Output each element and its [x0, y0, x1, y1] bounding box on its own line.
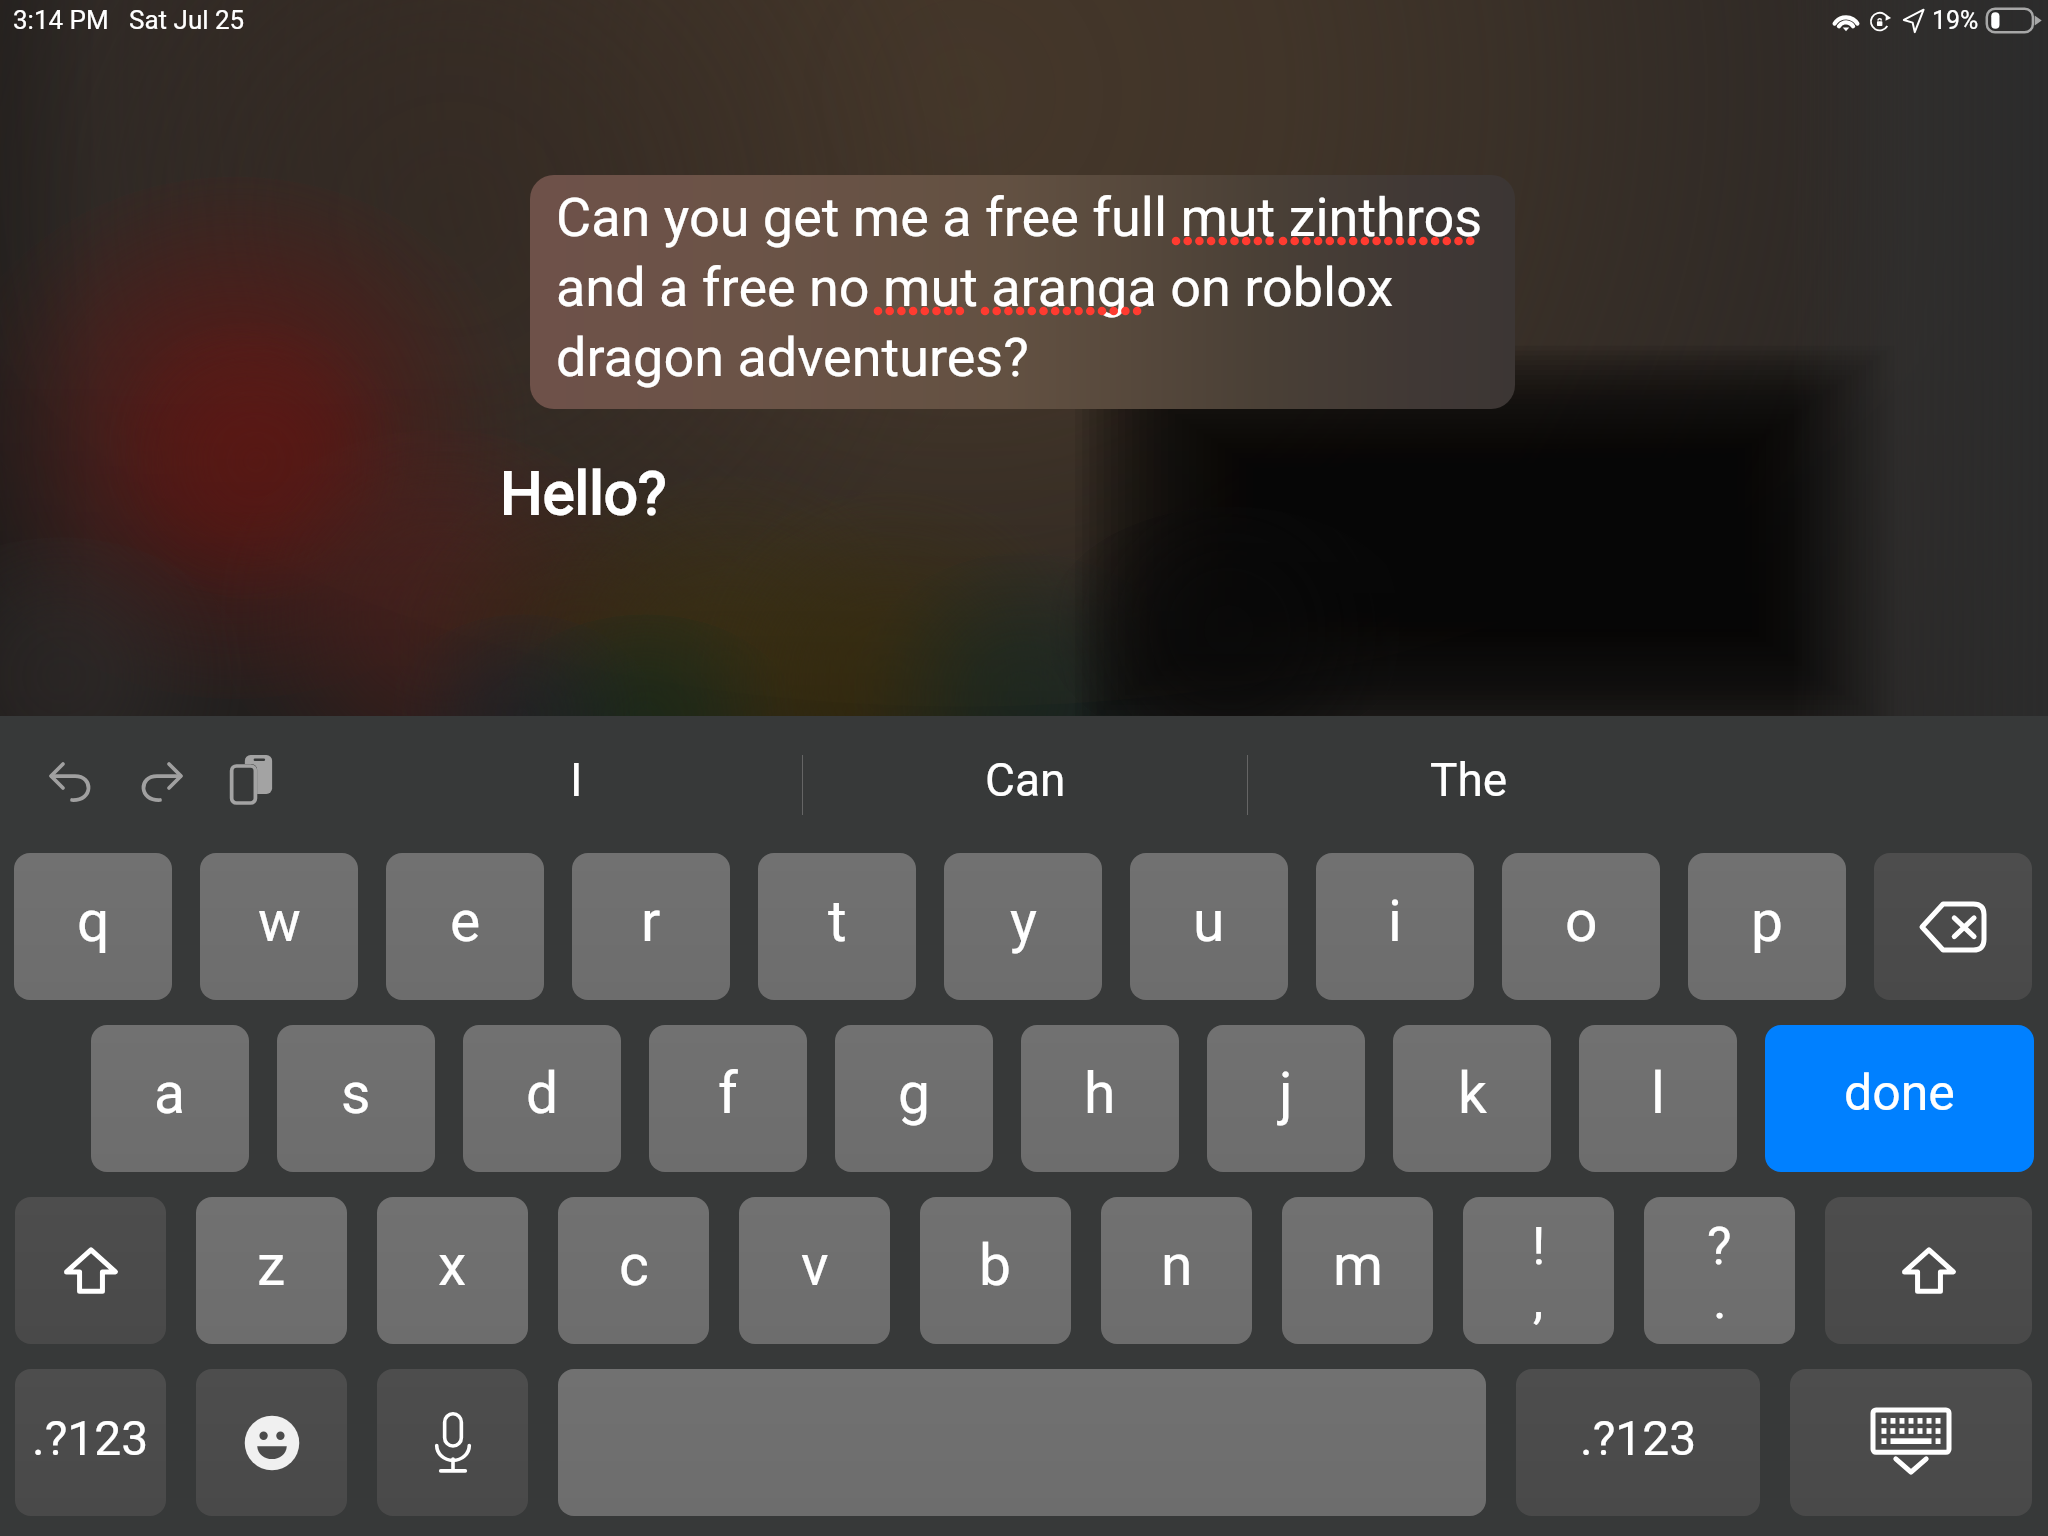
button[interactable]: a — [91, 1025, 249, 1172]
staticText: ! — [1532, 1216, 1546, 1277]
staticText: m — [1333, 1232, 1383, 1299]
button[interactable]: s — [277, 1025, 435, 1172]
button[interactable]: Undo — [38, 747, 104, 813]
staticText: 19% — [1932, 6, 1979, 35]
staticText: j — [1279, 1060, 1293, 1127]
button[interactable]: v — [739, 1197, 890, 1344]
staticText: n — [1161, 1232, 1193, 1299]
staticText: q — [77, 888, 110, 955]
staticText: .?123 — [32, 1410, 149, 1466]
button[interactable]: q — [14, 853, 172, 1000]
staticText: z — [257, 1232, 286, 1299]
staticText: done — [1844, 1064, 1955, 1123]
button[interactable]: n — [1101, 1197, 1252, 1344]
staticText: Hello? — [500, 458, 667, 528]
button[interactable]: Shift — [1825, 1197, 2032, 1344]
button[interactable]: Backspace — [1874, 853, 2032, 1000]
staticText: o — [1565, 888, 1598, 955]
staticText: p — [1751, 888, 1784, 955]
button[interactable]: Dictation — [377, 1369, 528, 1516]
staticText: and a free no mut aranga on roblox — [556, 256, 1394, 319]
staticText: I — [570, 753, 583, 807]
button[interactable]: h — [1021, 1025, 1179, 1172]
staticText: g — [898, 1060, 931, 1127]
button[interactable]: .?123 — [15, 1369, 166, 1516]
staticText: k — [1458, 1060, 1487, 1127]
staticText: ? — [1707, 1216, 1732, 1277]
staticText: u — [1193, 888, 1225, 955]
button[interactable]: ! — [1463, 1197, 1614, 1344]
staticText: b — [979, 1232, 1012, 1299]
button[interactable]: .?123 — [1516, 1369, 1760, 1516]
button[interactable]: c — [558, 1197, 709, 1344]
staticText: t — [828, 888, 847, 955]
staticText: .?123 — [1580, 1410, 1697, 1466]
staticText: Can you get me a free full mut zinthros — [556, 186, 1483, 249]
staticText: d — [526, 1060, 559, 1127]
staticText: f — [718, 1060, 738, 1127]
staticText: Can — [985, 753, 1066, 807]
button[interactable]: done — [1765, 1025, 2034, 1172]
staticText: x — [438, 1232, 467, 1299]
button[interactable]: Shift — [15, 1197, 166, 1344]
button[interactable]: z — [196, 1197, 347, 1344]
staticText: a — [154, 1060, 186, 1127]
button[interactable]: b — [920, 1197, 1071, 1344]
button[interactable]: Can — [803, 716, 1247, 853]
button[interactable]: k — [1393, 1025, 1551, 1172]
button[interactable]: o — [1502, 853, 1660, 1000]
button[interactable]: t — [758, 853, 916, 1000]
button[interactable]: f — [649, 1025, 807, 1172]
button[interactable]: Hide keyboard — [1790, 1369, 2032, 1516]
button[interactable]: y — [944, 853, 1102, 1000]
button[interactable]: I — [351, 716, 802, 853]
staticText: i — [1388, 888, 1402, 955]
staticText: r — [641, 888, 661, 955]
staticText: 3:14 PM — [13, 5, 109, 35]
button[interactable]: p — [1688, 853, 1846, 1000]
button[interactable]: x — [377, 1197, 528, 1344]
button[interactable]: g — [835, 1025, 993, 1172]
staticText: h — [1084, 1060, 1116, 1127]
button[interactable]: l — [1579, 1025, 1737, 1172]
staticText: s — [341, 1060, 371, 1127]
button[interactable]: w — [200, 853, 358, 1000]
staticText: c — [619, 1232, 649, 1299]
button[interactable]: Emoji — [196, 1369, 347, 1516]
staticText: l — [1651, 1060, 1665, 1127]
button[interactable]: u — [1130, 853, 1288, 1000]
staticText: , — [1533, 1270, 1544, 1331]
button[interactable]: Redo — [128, 747, 194, 813]
button[interactable]: Paste — [218, 747, 284, 813]
button[interactable]: e — [386, 853, 544, 1000]
button[interactable]: d — [463, 1025, 621, 1172]
button[interactable]: The — [1248, 716, 1690, 853]
button[interactable]: r — [572, 853, 730, 1000]
button[interactable]: m — [1282, 1197, 1433, 1344]
staticText: dragon adventures? — [556, 326, 1029, 389]
staticText: . — [1713, 1270, 1727, 1331]
staticText: w — [258, 888, 301, 955]
button[interactable]: j — [1207, 1025, 1365, 1172]
staticText: y — [1010, 888, 1037, 955]
button[interactable]: i — [1316, 853, 1474, 1000]
staticText: Sat Jul 25 — [129, 5, 245, 35]
button[interactable]: ? — [1644, 1197, 1795, 1344]
staticText: v — [801, 1232, 829, 1299]
staticText: The — [1430, 753, 1508, 807]
staticText: e — [450, 888, 481, 955]
